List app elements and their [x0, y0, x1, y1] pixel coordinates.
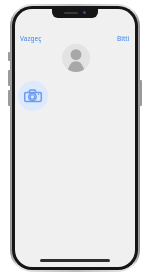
- staticText: Bitti: [117, 34, 130, 43]
- button[interactable]: Bitti: [114, 32, 133, 45]
- button[interactable]: Take photo: [18, 81, 48, 111]
- button[interactable]: Profile photo: [62, 44, 90, 72]
- staticText: Vazgeç: [20, 34, 42, 43]
- button[interactable]: Vazgeç: [17, 32, 45, 45]
